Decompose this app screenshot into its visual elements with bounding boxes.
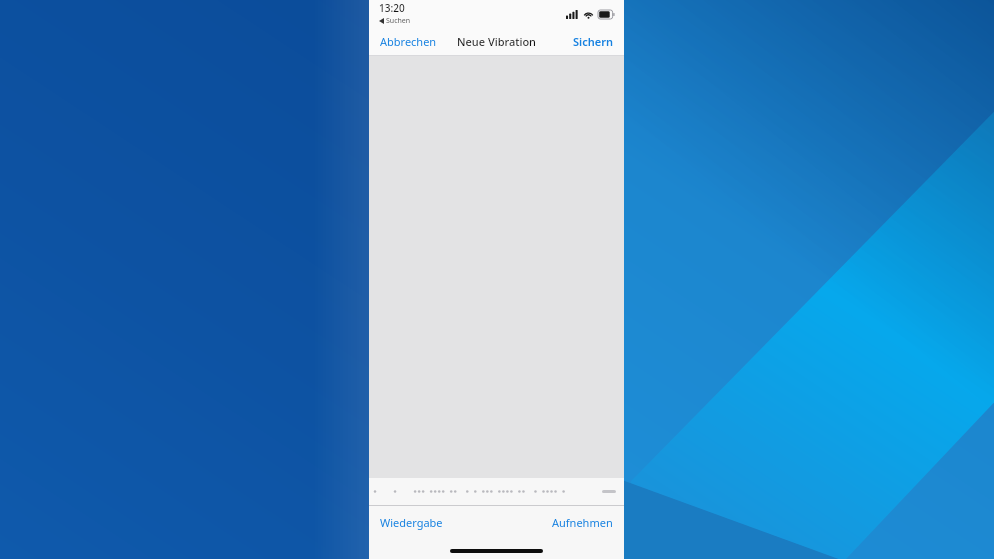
button[interactable]: Abbrechen: [369, 29, 448, 54]
staticText: 13:20: [379, 1, 405, 15]
button[interactable]: Wiedergabe: [369, 510, 454, 535]
button[interactable]: Aufnehmen: [541, 510, 624, 535]
staticText: Abbrechen: [380, 34, 437, 49]
button[interactable]: Sichern: [562, 29, 624, 54]
staticText: Suchen: [386, 16, 411, 26]
staticText: Neue Vibration: [457, 34, 537, 49]
staticText: Aufnehmen: [552, 515, 613, 530]
staticText: Wiedergabe: [380, 515, 443, 530]
staticText: Sichern: [573, 34, 613, 49]
button[interactable]: Vibrationsmuster: [369, 478, 624, 505]
